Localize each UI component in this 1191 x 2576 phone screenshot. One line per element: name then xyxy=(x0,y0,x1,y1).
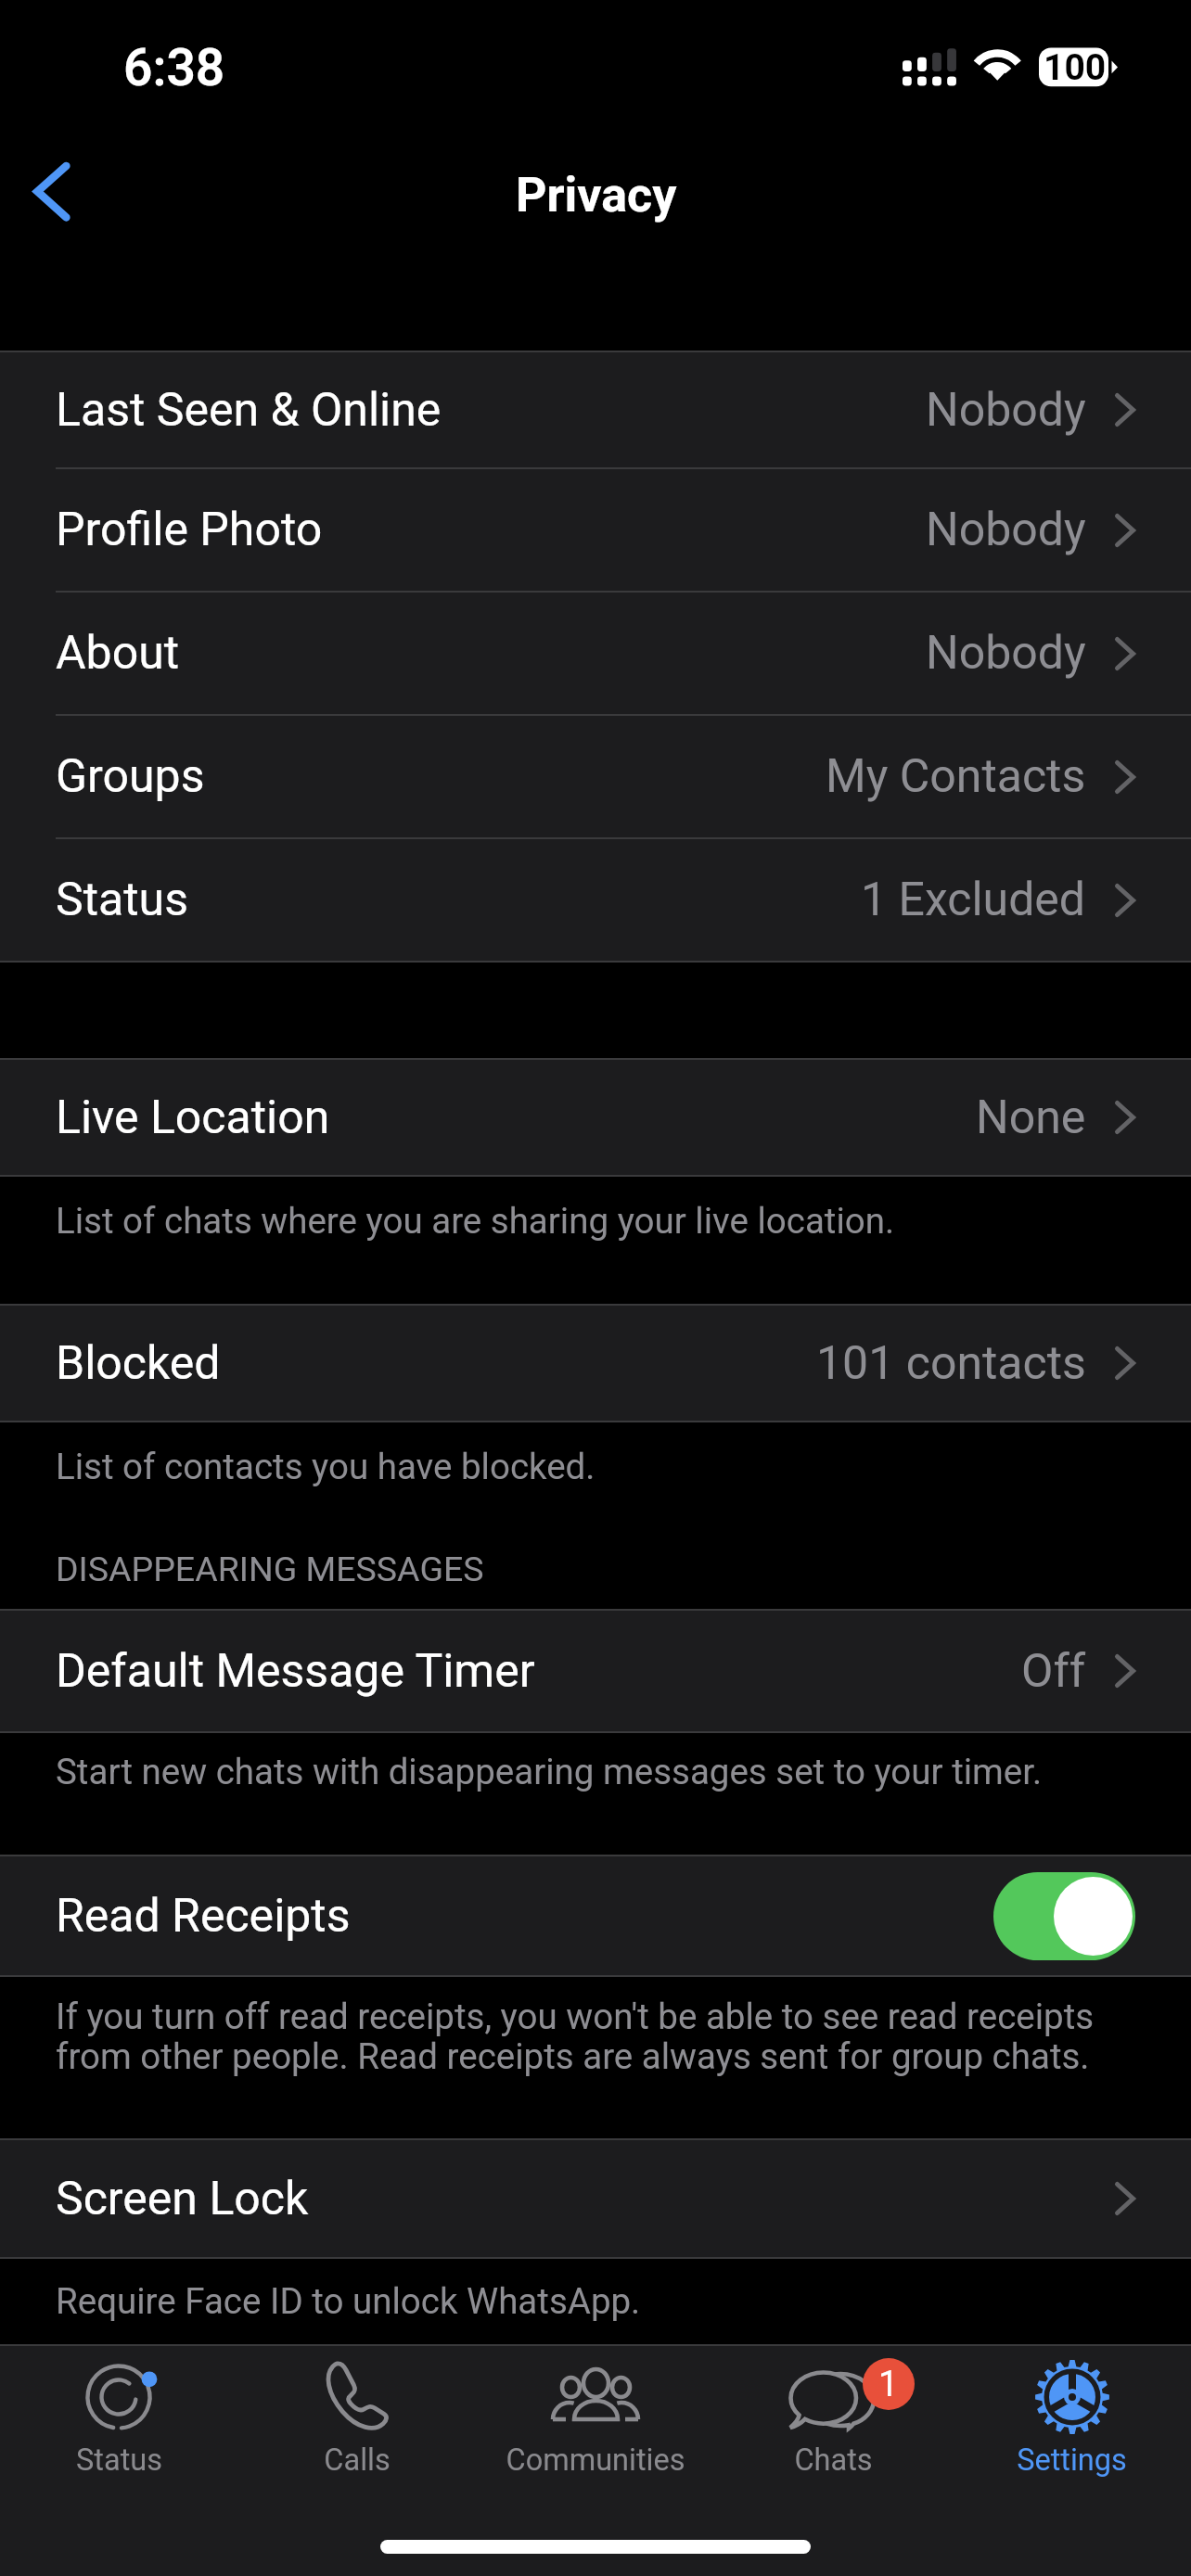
staticText: Nobody xyxy=(926,383,1086,438)
button[interactable]: Profile Photo xyxy=(0,469,1191,591)
button[interactable]: Screen Lock xyxy=(0,2140,1191,2257)
staticText: Status xyxy=(76,2442,162,2478)
staticText: None xyxy=(976,1090,1086,1145)
staticText: Last Seen & Online xyxy=(56,383,442,438)
staticText: Require Face ID to unlock WhatsApp. xyxy=(56,2280,1136,2322)
staticText: Start new chats with disappearing messag… xyxy=(56,1751,1136,1792)
button[interactable]: Live Location xyxy=(0,1060,1191,1175)
staticText: 101 contacts xyxy=(816,1336,1086,1391)
staticText: Live Location xyxy=(56,1090,330,1145)
button[interactable]: Communities xyxy=(476,2344,714,2576)
staticText: DISAPPEARING MESSAGES xyxy=(56,1549,484,1589)
staticText: Nobody xyxy=(926,626,1086,681)
staticText: Read Receipts xyxy=(56,1889,351,1944)
staticText: Default Message Timer xyxy=(56,1644,535,1699)
staticText: Groups xyxy=(56,749,205,804)
button[interactable]: Blocked xyxy=(0,1306,1191,1421)
staticText: Profile Photo xyxy=(56,503,323,557)
staticText: If you turn off read receipts, you won't… xyxy=(56,1996,1136,2077)
staticText: Screen Lock xyxy=(56,2172,309,2226)
staticText: Chats xyxy=(794,2442,873,2478)
button[interactable]: Read Receipts xyxy=(0,1856,1191,1975)
button[interactable]: About xyxy=(0,593,1191,714)
staticText: List of chats where you are sharing your… xyxy=(56,1200,1136,1242)
button[interactable]: Last Seen & Online xyxy=(0,352,1191,467)
staticText: 100 xyxy=(1044,46,1107,89)
button[interactable]: Back xyxy=(0,135,104,247)
button[interactable]: Calls xyxy=(237,2344,476,2576)
button[interactable]: Default Message Timer xyxy=(0,1611,1191,1731)
button[interactable]: 1 xyxy=(714,2344,953,2576)
staticText: 6:38 xyxy=(123,38,225,97)
staticText: Settings xyxy=(1017,2442,1127,2478)
button[interactable]: Status xyxy=(0,2344,237,2576)
button[interactable]: Settings xyxy=(953,2344,1191,2576)
staticText: My Contacts xyxy=(826,749,1086,804)
button[interactable]: Status xyxy=(0,839,1191,961)
staticText: Status xyxy=(56,873,188,927)
staticText: About xyxy=(56,626,180,681)
button[interactable]: Groups xyxy=(0,716,1191,837)
staticText: Nobody xyxy=(926,503,1086,557)
staticText: Privacy xyxy=(516,167,677,223)
staticText: 1 xyxy=(878,2364,899,2405)
staticText: Blocked xyxy=(56,1336,221,1391)
staticText: Off xyxy=(1021,1644,1086,1699)
staticText: Communities xyxy=(506,2442,685,2478)
staticText: 1 Excluded xyxy=(861,873,1086,927)
staticText: List of contacts you have blocked. xyxy=(56,1446,1136,1487)
staticText: Calls xyxy=(324,2442,391,2478)
